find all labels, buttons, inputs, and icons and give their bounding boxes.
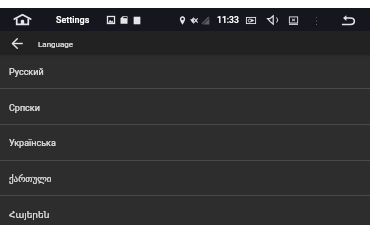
button[interactable]: Back	[338, 11, 359, 29]
button[interactable]: Հայերեն	[0, 196, 370, 232]
button[interactable]: ქართული	[0, 160, 370, 196]
button[interactable]: Српски	[0, 89, 370, 125]
button[interactable]: Home	[11, 11, 34, 28]
button[interactable]: More options	[312, 13, 321, 29]
staticText: Српски	[9, 103, 40, 114]
button[interactable]: Українська	[0, 124, 370, 160]
button[interactable]: Navigate up	[5, 31, 29, 53]
staticText: Settings	[56, 15, 90, 26]
button[interactable]: Русский	[0, 53, 370, 89]
staticText: Русский	[9, 67, 44, 78]
staticText: 11:33	[217, 15, 239, 25]
staticText: Հայերեն	[9, 210, 50, 220]
staticText: ქართული	[9, 174, 52, 184]
staticText: Language	[38, 40, 74, 49]
staticText: Українська	[9, 138, 56, 149]
